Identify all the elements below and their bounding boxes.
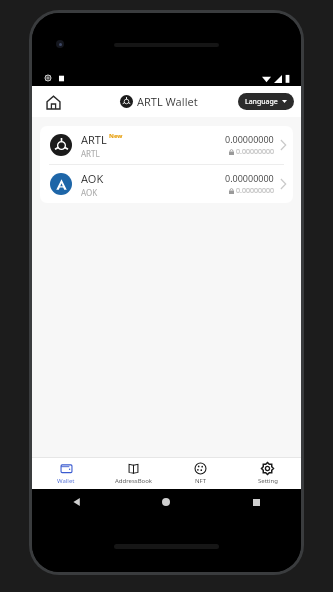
staticText: New [109, 132, 123, 140]
staticText: Language [245, 97, 278, 107]
button[interactable]: AddressBook [100, 458, 167, 489]
staticText: AddressBook [115, 477, 153, 485]
staticText: Setting [258, 477, 278, 485]
staticText: Wallet [57, 477, 75, 485]
button[interactable]: Language [238, 93, 294, 110]
button[interactable]: NFT [167, 458, 234, 489]
staticText: ARTL [81, 132, 107, 147]
staticText: NFT [195, 477, 207, 485]
staticText: 0.00000000 [236, 186, 274, 196]
staticText: AOK [81, 171, 104, 186]
staticText: ARTL [81, 148, 100, 159]
button[interactable]: Setting [234, 458, 301, 489]
button[interactable]: Home [121, 489, 211, 515]
button[interactable]: Home [40, 89, 66, 115]
button[interactable]: Wallet [32, 458, 100, 489]
staticText: 0.00000000 [225, 133, 274, 145]
staticText: 0.00000000 [236, 147, 274, 157]
staticText: 0.00000000 [225, 172, 274, 184]
staticText: ARTL Wallet [137, 94, 198, 109]
staticText: AOK [81, 187, 98, 198]
button[interactable]: Recent apps [211, 489, 301, 515]
button[interactable]: ARTL [40, 126, 293, 164]
button[interactable]: Back [32, 489, 121, 515]
button[interactable]: AOK [40, 165, 293, 203]
